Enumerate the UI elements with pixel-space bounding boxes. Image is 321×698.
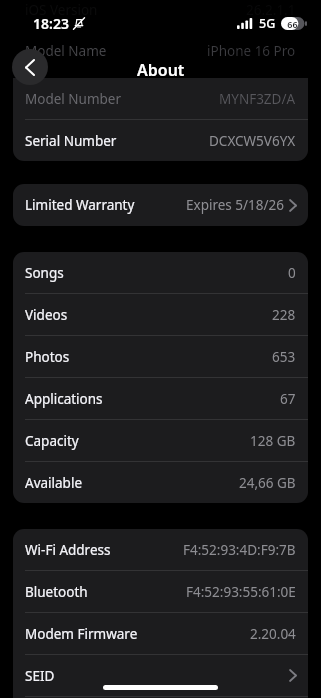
button[interactable]: Photos <box>13 336 308 377</box>
staticText: DCXCW5V6YX <box>209 132 296 150</box>
staticText: 128 GB <box>250 432 296 450</box>
button[interactable]: Modem Firmware <box>13 613 308 654</box>
staticText: Available <box>25 474 82 492</box>
button[interactable]: Videos <box>13 294 308 335</box>
staticText: Videos <box>25 306 68 324</box>
staticText: 67 <box>280 390 296 408</box>
staticText: Bluetooth <box>25 583 88 601</box>
button[interactable]: Bluetooth <box>13 571 308 612</box>
button[interactable]: Applications <box>13 378 308 419</box>
button[interactable]: SEID <box>13 655 308 696</box>
staticText: Model Number <box>25 90 122 108</box>
button[interactable]: Wi-Fi Address <box>13 529 308 570</box>
button[interactable]: Capacity <box>13 420 308 461</box>
staticText: 66 <box>287 18 298 30</box>
staticText: Songs <box>25 264 64 282</box>
staticText: F4:52:93:55:61:0E <box>186 583 296 601</box>
staticText: Limited Warranty <box>25 196 135 214</box>
staticText: iPhone 16 Pro <box>207 42 296 60</box>
staticText: 5G <box>259 15 276 32</box>
button[interactable]: Available <box>13 462 308 503</box>
button[interactable]: Limited Warranty <box>13 184 308 226</box>
staticText: About <box>137 59 185 81</box>
button[interactable]: Model Number <box>13 78 308 119</box>
staticText: 0 <box>288 264 296 282</box>
staticText: 228 <box>272 306 296 324</box>
staticText: SEID <box>25 667 55 685</box>
staticText: 2.20.04 <box>250 625 296 643</box>
staticText: Expires 5/18/26 <box>186 196 284 214</box>
staticText: 24,66 GB <box>239 474 296 492</box>
button[interactable]: Songs <box>13 252 308 293</box>
staticText: 653 <box>272 348 296 366</box>
button[interactable]: Back <box>12 49 48 85</box>
staticText: 18:23 <box>33 14 69 33</box>
staticText: MYNF3ZD/A <box>219 90 296 108</box>
staticText: Photos <box>25 348 70 366</box>
staticText: Capacity <box>25 432 79 450</box>
button[interactable]: Serial Number <box>13 120 308 161</box>
staticText: Wi-Fi Address <box>25 541 111 559</box>
staticText: iOS Version <box>25 1 98 19</box>
staticText: 26.2.1.1 <box>246 1 296 19</box>
staticText: Modem Firmware <box>25 625 138 643</box>
staticText: Serial Number <box>25 132 117 150</box>
staticText: Model Name <box>25 42 107 60</box>
staticText: F4:52:93:4D:F9:7B <box>183 541 296 559</box>
staticText: Applications <box>25 390 103 408</box>
